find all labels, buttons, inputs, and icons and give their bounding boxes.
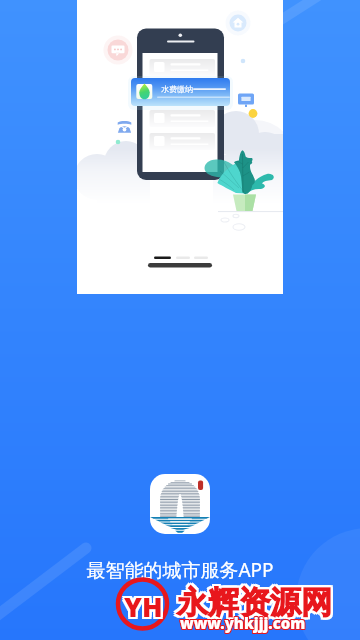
staticText: www.yhkjjj.com: [181, 613, 307, 633]
staticText: 永辉资源网: [179, 585, 334, 624]
staticText: www.yhkjjj.com: [181, 614, 307, 634]
staticText: YH: [122, 586, 161, 623]
staticText: YH: [126, 588, 165, 625]
staticText: www.yhkjjj.com: [180, 614, 306, 634]
staticText: YH: [122, 588, 161, 625]
button[interactable]: App icon: [150, 474, 210, 534]
staticText: www.yhkjjj.com: [181, 612, 307, 632]
staticText: 永辉资源网: [179, 581, 334, 620]
staticText: YH: [124, 588, 163, 625]
staticText: 永辉资源网: [179, 583, 334, 622]
staticText: 永辉资源网: [175, 585, 330, 624]
staticText: www.yhkjjj.com: [180, 613, 306, 633]
staticText: YH: [124, 586, 163, 623]
staticText: YH: [126, 586, 165, 623]
staticText: 永辉资源网: [175, 581, 330, 620]
staticText: YH: [126, 590, 165, 627]
staticText: www.yhkjjj.com: [179, 612, 305, 632]
staticText: YH: [122, 590, 161, 627]
staticText: 永辉资源网: [177, 581, 332, 620]
staticText: 水费缴纳: [161, 84, 193, 94]
staticText: 永辉资源网: [177, 583, 332, 622]
staticText: www.yhkjjj.com: [180, 612, 306, 632]
staticText: YH: [124, 590, 163, 627]
staticText: 永辉资源网: [175, 583, 330, 622]
staticText: www.yhkjjj.com: [179, 614, 305, 634]
staticText: www.yhkjjj.com: [179, 613, 305, 633]
staticText: 永辉资源网: [177, 585, 332, 624]
staticText: 最智能的城市服务APP: [86, 557, 274, 583]
